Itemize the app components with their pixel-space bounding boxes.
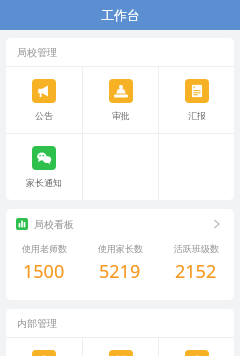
button[interactable]: 局校看板	[6, 209, 234, 239]
button[interactable]: 审批	[83, 67, 158, 133]
staticText: 工作台	[101, 7, 140, 23]
staticText: 2152	[175, 259, 217, 284]
staticText: 内部管理	[17, 317, 57, 330]
staticText: 汇报	[188, 110, 206, 121]
other: 查看详情	[210, 217, 224, 231]
staticText: 使用家长数	[98, 243, 143, 254]
button[interactable]: 公告	[6, 67, 82, 133]
staticText: 家长通知	[26, 177, 62, 188]
staticText: 局校看板	[34, 218, 74, 231]
staticText: 活跃班级数	[174, 243, 219, 254]
staticText: 1500	[23, 259, 65, 284]
button[interactable]: 通讯录	[6, 338, 82, 356]
button[interactable]: 日程	[83, 338, 158, 356]
staticText: 局校管理	[17, 46, 57, 59]
button[interactable]: 汇报	[159, 67, 234, 133]
button[interactable]: 家长通知	[6, 134, 82, 200]
staticText: 审批	[112, 110, 130, 121]
button[interactable]: 考勤	[159, 338, 234, 356]
staticText: 公告	[35, 110, 53, 121]
staticText: 使用老师数	[22, 243, 67, 254]
staticText: 5219	[99, 259, 141, 284]
